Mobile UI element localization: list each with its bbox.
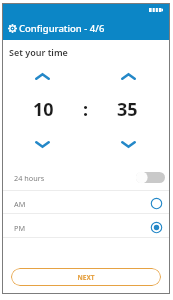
button[interactable]: NEXT (11, 268, 161, 286)
button[interactable]: Increase (115, 67, 141, 85)
staticText: : (83, 97, 89, 122)
button[interactable]: 24 hours (2, 166, 170, 189)
button[interactable]: Configuration - 4/6 (2, 19, 170, 37)
button[interactable]: Decrease (115, 135, 141, 153)
staticText: Configuration - 4/6 (19, 22, 105, 35)
staticText: PM (14, 223, 26, 233)
button[interactable]: Decrease (29, 135, 55, 153)
button[interactable]: Increase (29, 67, 55, 85)
staticText: 10 (33, 97, 54, 122)
button[interactable]: PM (2, 216, 170, 239)
other: Battery (149, 8, 163, 12)
staticText: Set your time (9, 46, 68, 58)
staticText: 35 (117, 97, 138, 122)
staticText: 24 hours (14, 173, 45, 183)
staticText: NEXT (77, 273, 95, 282)
button[interactable]: AM (2, 192, 170, 215)
staticText: AM (14, 199, 26, 209)
